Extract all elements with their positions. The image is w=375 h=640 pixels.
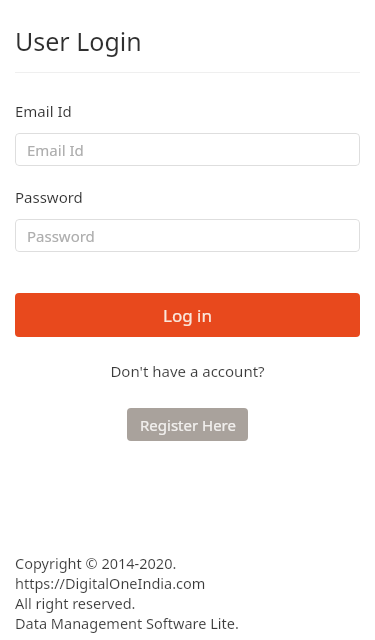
- staticText: Log in: [163, 304, 212, 327]
- staticText: User Login: [15, 24, 142, 58]
- button[interactable]: Log in: [15, 293, 360, 337]
- staticText: Email Id: [15, 101, 72, 121]
- staticText: https://DigitalOneIndia.com: [15, 573, 206, 593]
- button[interactable]: Password: [15, 219, 360, 252]
- button[interactable]: Email Id: [15, 133, 360, 166]
- staticText: Data Management Software Lite.: [15, 613, 239, 633]
- staticText: Password: [27, 226, 95, 246]
- staticText: Email Id: [27, 140, 84, 160]
- staticText: Copyright © 2014-2020.: [15, 553, 177, 573]
- staticText: Password: [15, 187, 83, 207]
- button[interactable]: Register Here: [127, 408, 248, 441]
- staticText: All right reserved.: [15, 593, 136, 613]
- staticText: Don't have a account?: [0, 361, 375, 381]
- staticText: Register Here: [140, 415, 236, 435]
